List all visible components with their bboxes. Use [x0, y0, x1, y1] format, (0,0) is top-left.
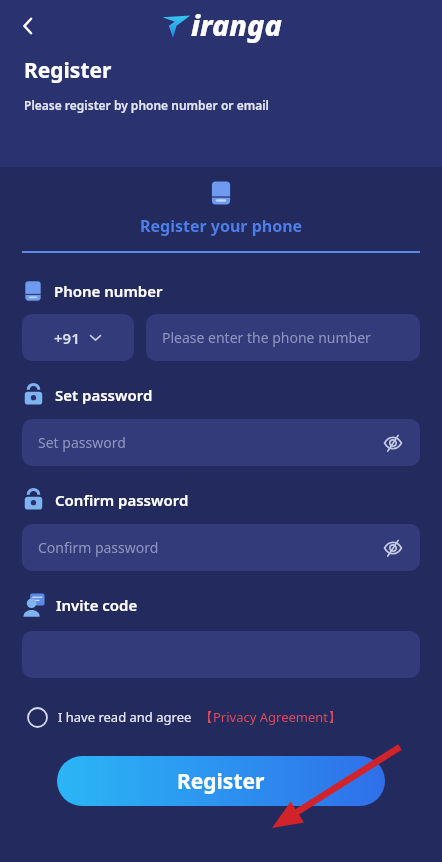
button[interactable]: 【Privacy Agreement】 — [200, 708, 342, 726]
staticText: iranga — [191, 5, 282, 44]
staticText: Please enter the phone number — [162, 328, 371, 347]
staticText: Please register by phone number or email — [24, 97, 270, 113]
button[interactable]: Agree to privacy agreement — [22, 702, 52, 732]
staticText: Set password — [55, 385, 153, 405]
staticText: Confirm password — [38, 538, 159, 557]
staticText: I have read and agree — [58, 708, 192, 726]
button[interactable]: Show password — [378, 428, 408, 458]
staticText: +91 — [54, 328, 80, 348]
button[interactable]: Set password — [22, 419, 420, 466]
button[interactable]: Show password — [378, 533, 408, 563]
button[interactable]: Register your phone — [0, 180, 442, 251]
button[interactable]: Back — [8, 6, 48, 46]
staticText: Invite code — [56, 595, 138, 615]
button[interactable]: +91 — [22, 314, 134, 361]
staticText: Register your phone — [140, 215, 303, 237]
button[interactable]: Register — [57, 756, 385, 806]
button[interactable]: Confirm password — [22, 524, 420, 571]
staticText: Register — [24, 56, 112, 85]
staticText: Confirm password — [55, 490, 189, 510]
button[interactable]: Please enter the phone number — [146, 314, 420, 361]
staticText: Set password — [38, 433, 126, 452]
staticText: Register — [177, 767, 265, 796]
staticText: 【Privacy Agreement】 — [200, 708, 342, 726]
staticText: Phone number — [54, 281, 163, 301]
